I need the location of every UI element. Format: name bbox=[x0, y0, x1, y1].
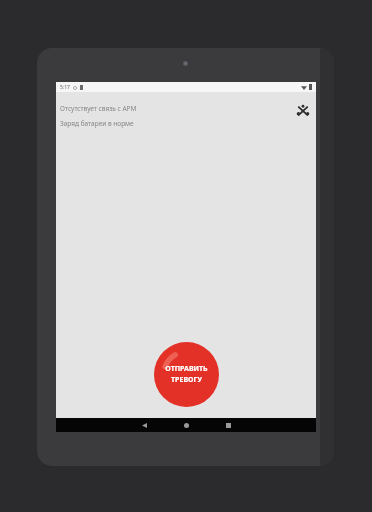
button[interactable]: Back bbox=[123, 418, 165, 432]
staticText: Отсутствует связь с АРМ bbox=[60, 104, 137, 113]
staticText: ТРЕВОГУ bbox=[171, 375, 202, 385]
staticText: ОТПРАВИТЬ bbox=[165, 364, 208, 374]
button[interactable]: ОТПРАВИТЬ bbox=[154, 342, 219, 407]
button[interactable]: Связь с АРМ отсутствует bbox=[296, 104, 310, 118]
button[interactable]: Recent apps bbox=[207, 418, 249, 432]
staticText: 5:17 bbox=[60, 84, 70, 91]
staticText: Заряд батареи в норме bbox=[60, 119, 134, 128]
button[interactable]: Home bbox=[165, 418, 207, 432]
